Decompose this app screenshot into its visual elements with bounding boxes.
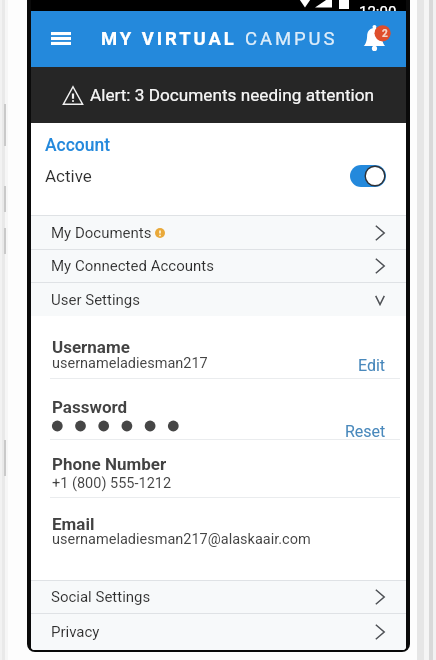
staticText: Phone Number bbox=[52, 454, 167, 474]
button[interactable]: Alert: 3 Documents needing attention bbox=[31, 67, 406, 123]
staticText: My Connected Accounts bbox=[51, 257, 214, 275]
staticText: User Settings bbox=[51, 291, 140, 309]
staticText: My Documents bbox=[51, 224, 152, 242]
button[interactable]: Open navigation menu bbox=[40, 17, 82, 59]
button[interactable]: Edit bbox=[333, 354, 386, 376]
staticText: Password bbox=[52, 397, 128, 417]
staticText: Username bbox=[52, 337, 130, 357]
button[interactable]: Privacy bbox=[31, 614, 406, 650]
button[interactable]: User Settings bbox=[31, 283, 406, 316]
staticText: CAMPUS bbox=[245, 28, 338, 50]
staticText: usernameladiesman217@alaskaair.com bbox=[52, 531, 311, 548]
button[interactable]: Notifications, 2 unread bbox=[355, 18, 398, 61]
staticText: Social Settings bbox=[51, 588, 151, 606]
staticText: Account bbox=[45, 135, 111, 156]
button[interactable]: Reset bbox=[333, 420, 386, 442]
button[interactable]: Social Settings bbox=[31, 581, 406, 613]
staticText: Alert: 3 Documents needing attention bbox=[90, 85, 375, 105]
staticText: 2 bbox=[382, 28, 388, 40]
staticText: usernameladiesman217 bbox=[52, 355, 208, 372]
staticText: Edit bbox=[358, 356, 386, 375]
button[interactable]: My Connected Accounts bbox=[31, 250, 406, 282]
staticText: +1 (800) 555-1212 bbox=[52, 475, 172, 492]
staticText: 12:00 bbox=[359, 3, 397, 14]
staticText: Privacy bbox=[51, 623, 100, 641]
staticText: Reset bbox=[345, 422, 386, 441]
staticText: Active bbox=[45, 166, 92, 186]
staticText: MY VIRTUAL bbox=[101, 28, 245, 50]
staticText: Email bbox=[52, 514, 95, 534]
button[interactable]: My Documents bbox=[31, 216, 406, 249]
button[interactable]: Active toggle, on bbox=[346, 162, 390, 190]
